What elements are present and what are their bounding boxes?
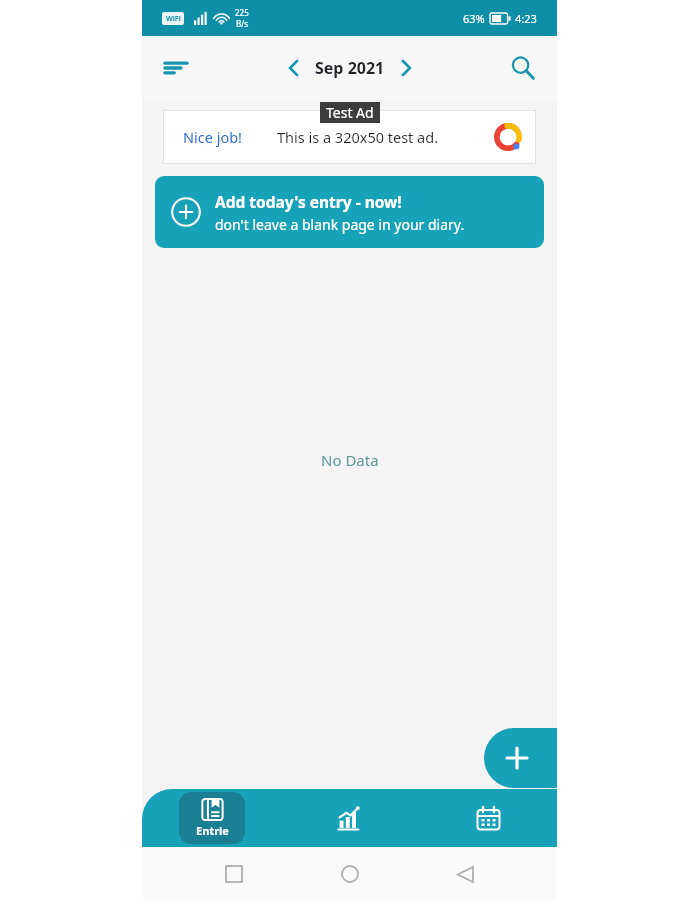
staticText: Test Ad: [326, 103, 374, 122]
staticText: Sep 2021: [315, 57, 385, 79]
staticText: Entrie: [196, 823, 229, 838]
staticText: No Data: [321, 450, 379, 470]
button[interactable]: Menu: [152, 44, 200, 92]
staticText: Add today's entry - now!: [215, 191, 402, 212]
button[interactable]: Nice job!: [163, 110, 536, 164]
button[interactable]: Add today's entry - now!: [155, 176, 544, 248]
button[interactable]: Home: [326, 850, 374, 898]
button[interactable]: Next month: [389, 51, 423, 85]
staticText: This is a 320x50 test ad.: [277, 127, 439, 147]
button[interactable]: Calendar: [419, 789, 557, 847]
staticText: don't leave a blank page in your diary.: [215, 215, 465, 234]
button[interactable]: Recents: [210, 850, 258, 898]
staticText: 63%: [463, 11, 485, 26]
staticText: WiFi: [166, 14, 181, 24]
staticText: 225: [235, 7, 249, 18]
button[interactable]: Entrie: [179, 792, 245, 844]
button[interactable]: Search: [499, 44, 547, 92]
button[interactable]: Previous month: [277, 51, 311, 85]
button[interactable]: Add entry: [484, 728, 557, 788]
button[interactable]: Sep 2021: [311, 57, 389, 79]
button[interactable]: Back: [441, 850, 489, 898]
staticText: Nice job!: [183, 127, 243, 147]
button[interactable]: Statistics: [281, 789, 419, 847]
staticText: 4:23: [515, 11, 537, 26]
staticText: B/s: [236, 18, 249, 29]
